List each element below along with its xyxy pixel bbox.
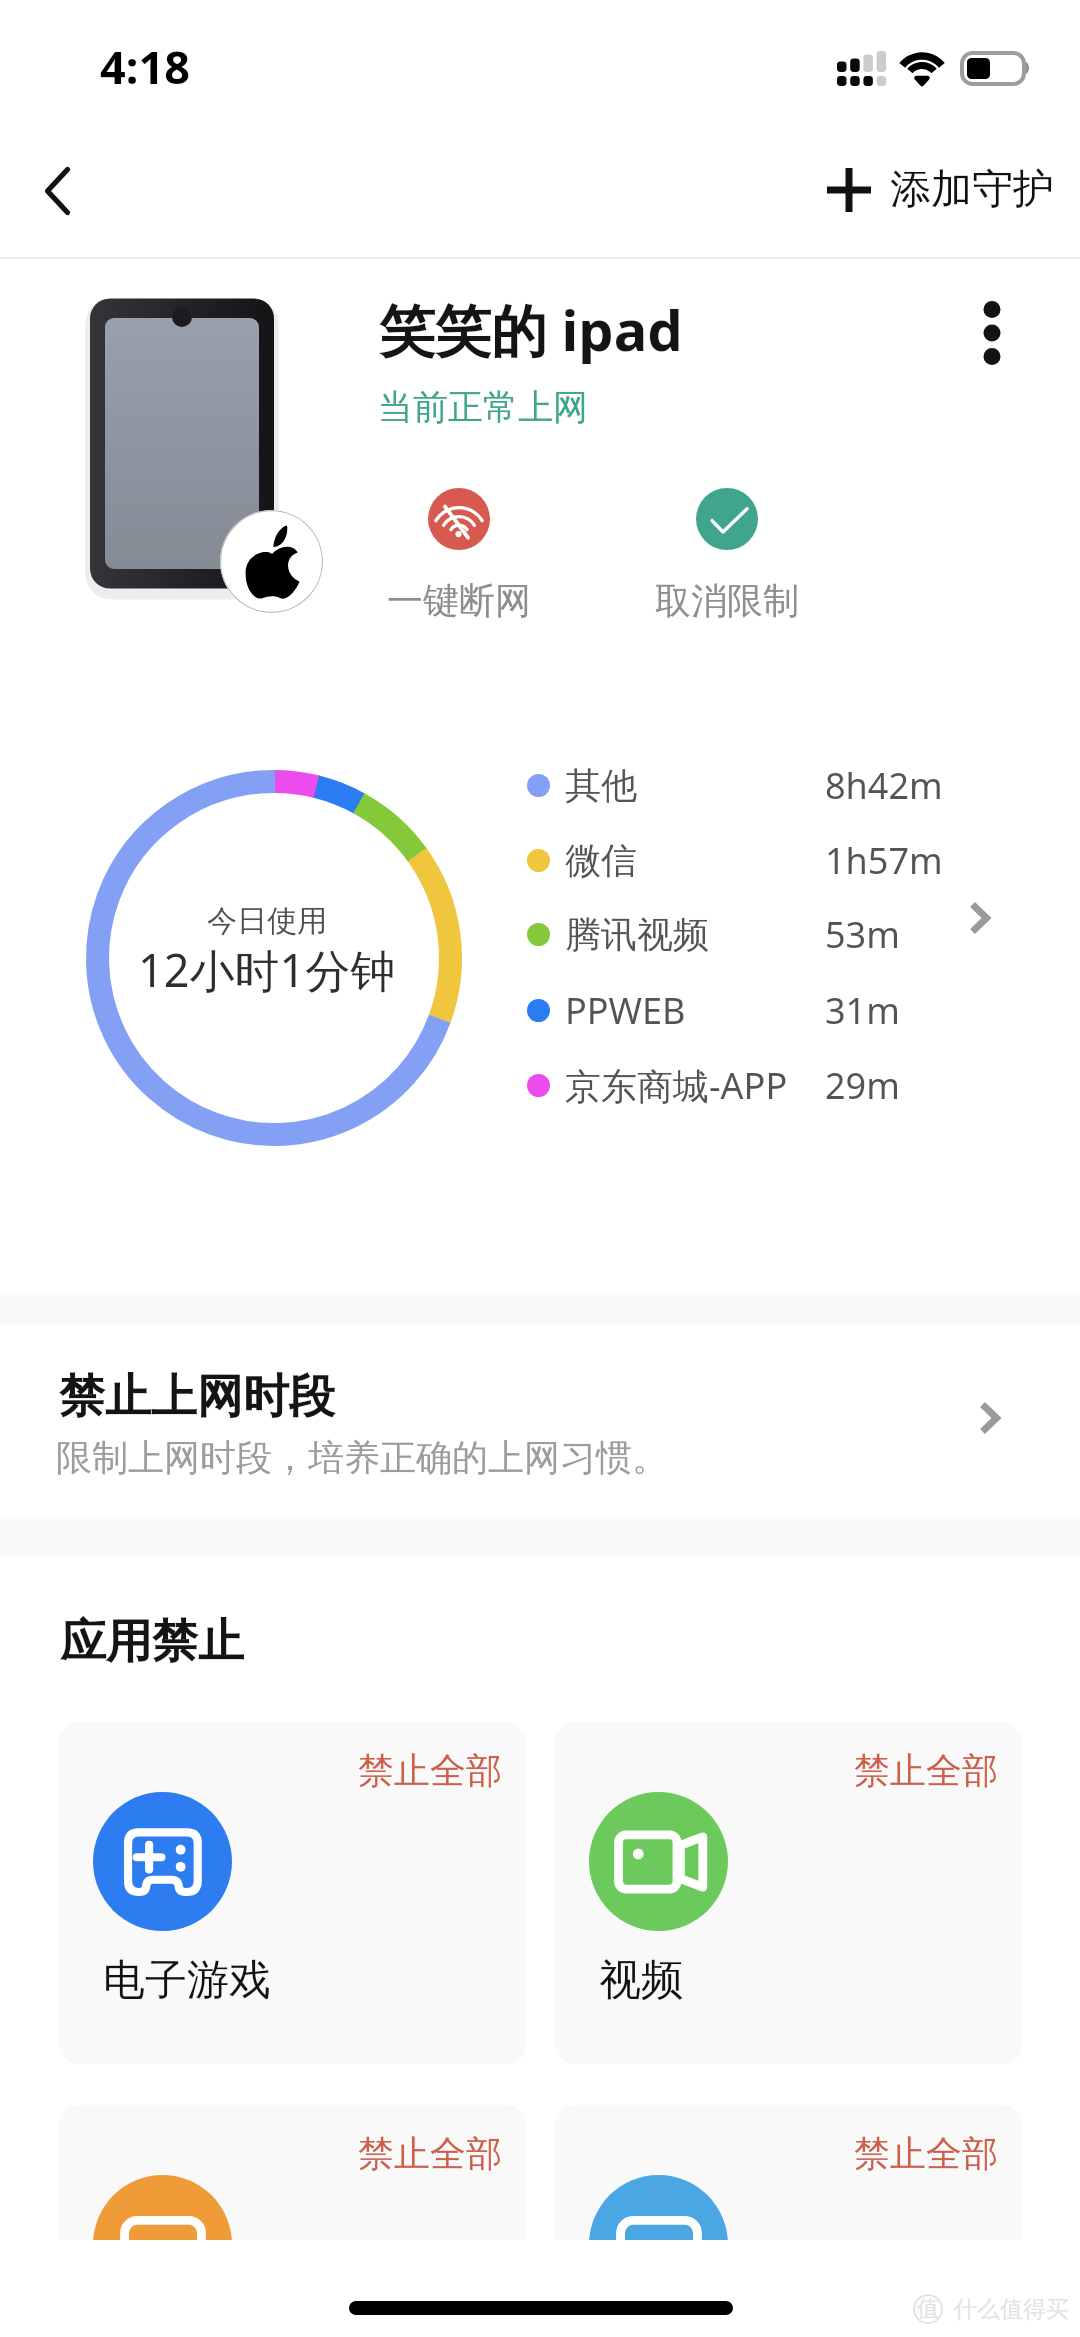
staticText: 禁止全部: [854, 1748, 998, 1793]
staticText: 禁止全部: [854, 2131, 998, 2176]
staticText: 笑笑的 ipad: [379, 291, 683, 367]
staticText: 1h57m: [825, 836, 943, 885]
button[interactable]: App usage details: [929, 868, 1029, 968]
button[interactable]: 禁止全部: [555, 2105, 1022, 2337]
staticText: 31m: [825, 986, 900, 1035]
staticText: 取消限制: [655, 578, 799, 623]
staticText: 53m: [825, 910, 900, 959]
staticText: 应用禁止: [60, 1613, 244, 1671]
staticText: 一键断网: [387, 578, 531, 623]
staticText: 今日使用: [207, 902, 327, 940]
staticText: 4:18: [100, 36, 190, 97]
staticText: 其他: [565, 763, 637, 808]
staticText: 添加守护: [890, 164, 1054, 216]
staticText: 29m: [825, 1061, 900, 1110]
staticText: 视频: [599, 1954, 683, 2007]
staticText: 电子游戏: [103, 1954, 271, 2007]
button[interactable]: 添加守护: [818, 150, 1062, 230]
button[interactable]: 禁止全部: [59, 1722, 526, 2064]
staticText: 值: [917, 2295, 939, 2323]
staticText: 微信: [565, 838, 637, 883]
button[interactable]: 一键断网: [379, 488, 539, 623]
button[interactable]: 禁止上网时段: [0, 1324, 1080, 1519]
button[interactable]: 禁止全部: [555, 1722, 1022, 2064]
staticText: 8h42m: [825, 761, 943, 810]
staticText: 禁止全部: [358, 2131, 502, 2176]
staticText: 什么值得买: [954, 2295, 1069, 2324]
staticText: 京东商城-APP: [565, 1061, 788, 1110]
staticText: 限制上网时段，培养正确的上网习惯。: [56, 1435, 668, 1480]
button[interactable]: 禁止全部: [59, 2105, 526, 2337]
staticText: 禁止全部: [358, 1748, 502, 1793]
button[interactable]: 取消限制: [647, 488, 807, 623]
staticText: 禁止上网时段: [59, 1368, 335, 1426]
staticText: PPWEB: [565, 986, 686, 1035]
staticText: 腾讯视频: [565, 912, 709, 957]
staticText: 当前正常上网: [378, 385, 588, 429]
button[interactable]: Back: [2, 136, 112, 246]
staticText: 12小时1分钟: [138, 939, 396, 1000]
button[interactable]: More options: [954, 288, 1030, 378]
